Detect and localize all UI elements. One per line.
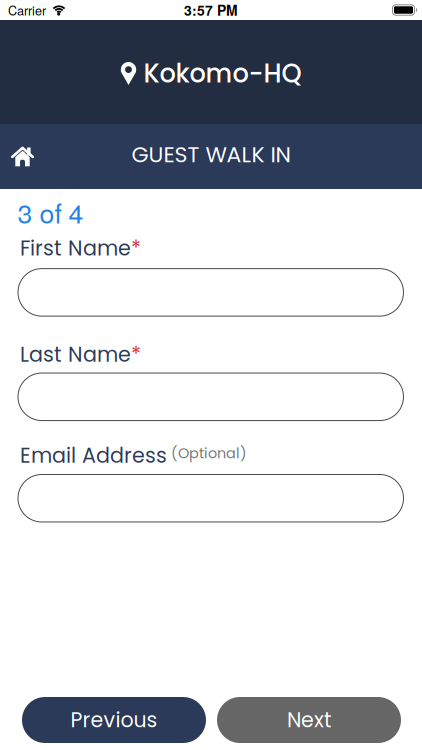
staticText: * — [131, 340, 141, 369]
staticText: Carrier — [8, 1, 46, 19]
staticText: Previous — [70, 706, 157, 734]
staticText: Next — [287, 706, 331, 734]
staticText: (Optional) — [171, 443, 247, 463]
staticText: 3 of 4 — [17, 193, 83, 231]
staticText: GUEST WALK IN — [131, 139, 290, 170]
button[interactable]: Home — [0, 145, 34, 167]
button[interactable]: Email Address — [0, 474, 422, 522]
button[interactable]: Last Name — [0, 373, 422, 421]
staticText: Last Name — [20, 340, 131, 369]
button[interactable]: Next — [217, 697, 401, 743]
staticText: Email Address — [20, 441, 167, 470]
staticText: * — [131, 234, 141, 263]
button[interactable]: Previous — [22, 697, 206, 743]
button[interactable]: First Name — [0, 268, 422, 317]
staticText: Kokomo-HQ — [143, 55, 301, 91]
staticText: 3:57 PM — [184, 0, 238, 20]
staticText: First Name — [20, 234, 131, 263]
